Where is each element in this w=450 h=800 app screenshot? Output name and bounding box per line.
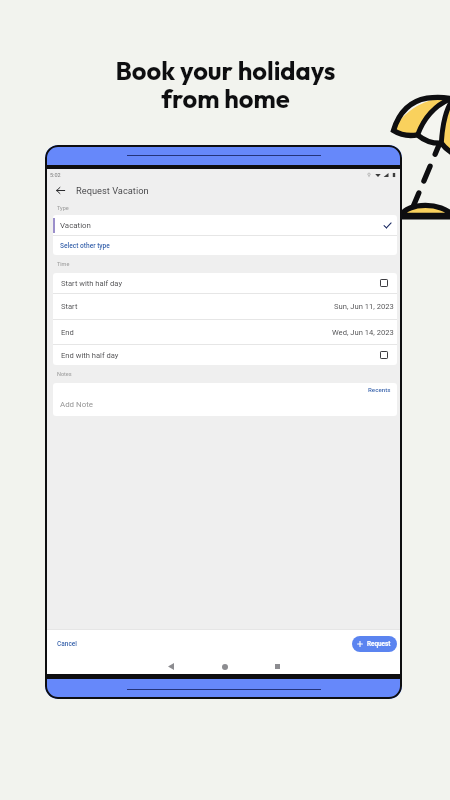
staticText: Start (61, 302, 78, 311)
button[interactable]: Start with half day (53, 273, 397, 293)
button[interactable]: Request (352, 636, 397, 652)
staticText: Notes (57, 371, 72, 377)
staticText: Vacation (60, 221, 91, 230)
staticText: Time (57, 261, 70, 267)
staticText: Request Vacation (76, 185, 149, 196)
button[interactable]: End with half day (53, 345, 397, 365)
button[interactable]: Recents (270, 659, 285, 674)
button[interactable]: Back (163, 659, 178, 674)
staticText: Cancel (57, 640, 77, 648)
staticText: Add Note (60, 400, 93, 409)
staticText: Type (57, 205, 69, 211)
staticText: Book your holidays from home (115, 54, 336, 114)
staticText: Request (367, 640, 391, 648)
button[interactable]: Vacation (53, 215, 397, 235)
button[interactable]: Start (53, 294, 397, 319)
button[interactable]: Back (53, 183, 68, 198)
staticText: Wed, Jun 14, 2023 (332, 328, 394, 337)
staticText: Recents (368, 386, 391, 393)
staticText: Start with half day (61, 279, 122, 288)
button[interactable]: Recents (368, 383, 397, 393)
staticText: Sun, Jun 11, 2023 (334, 302, 394, 311)
button[interactable]: End (53, 320, 397, 344)
button[interactable]: Home (217, 659, 232, 674)
staticText: Select other type (60, 242, 110, 250)
staticText: End with half day (61, 351, 119, 360)
button[interactable]: Select other type (53, 236, 397, 255)
staticText: 5:02 (50, 172, 61, 178)
button[interactable]: Cancel (53, 636, 81, 652)
staticText: End (61, 328, 74, 337)
